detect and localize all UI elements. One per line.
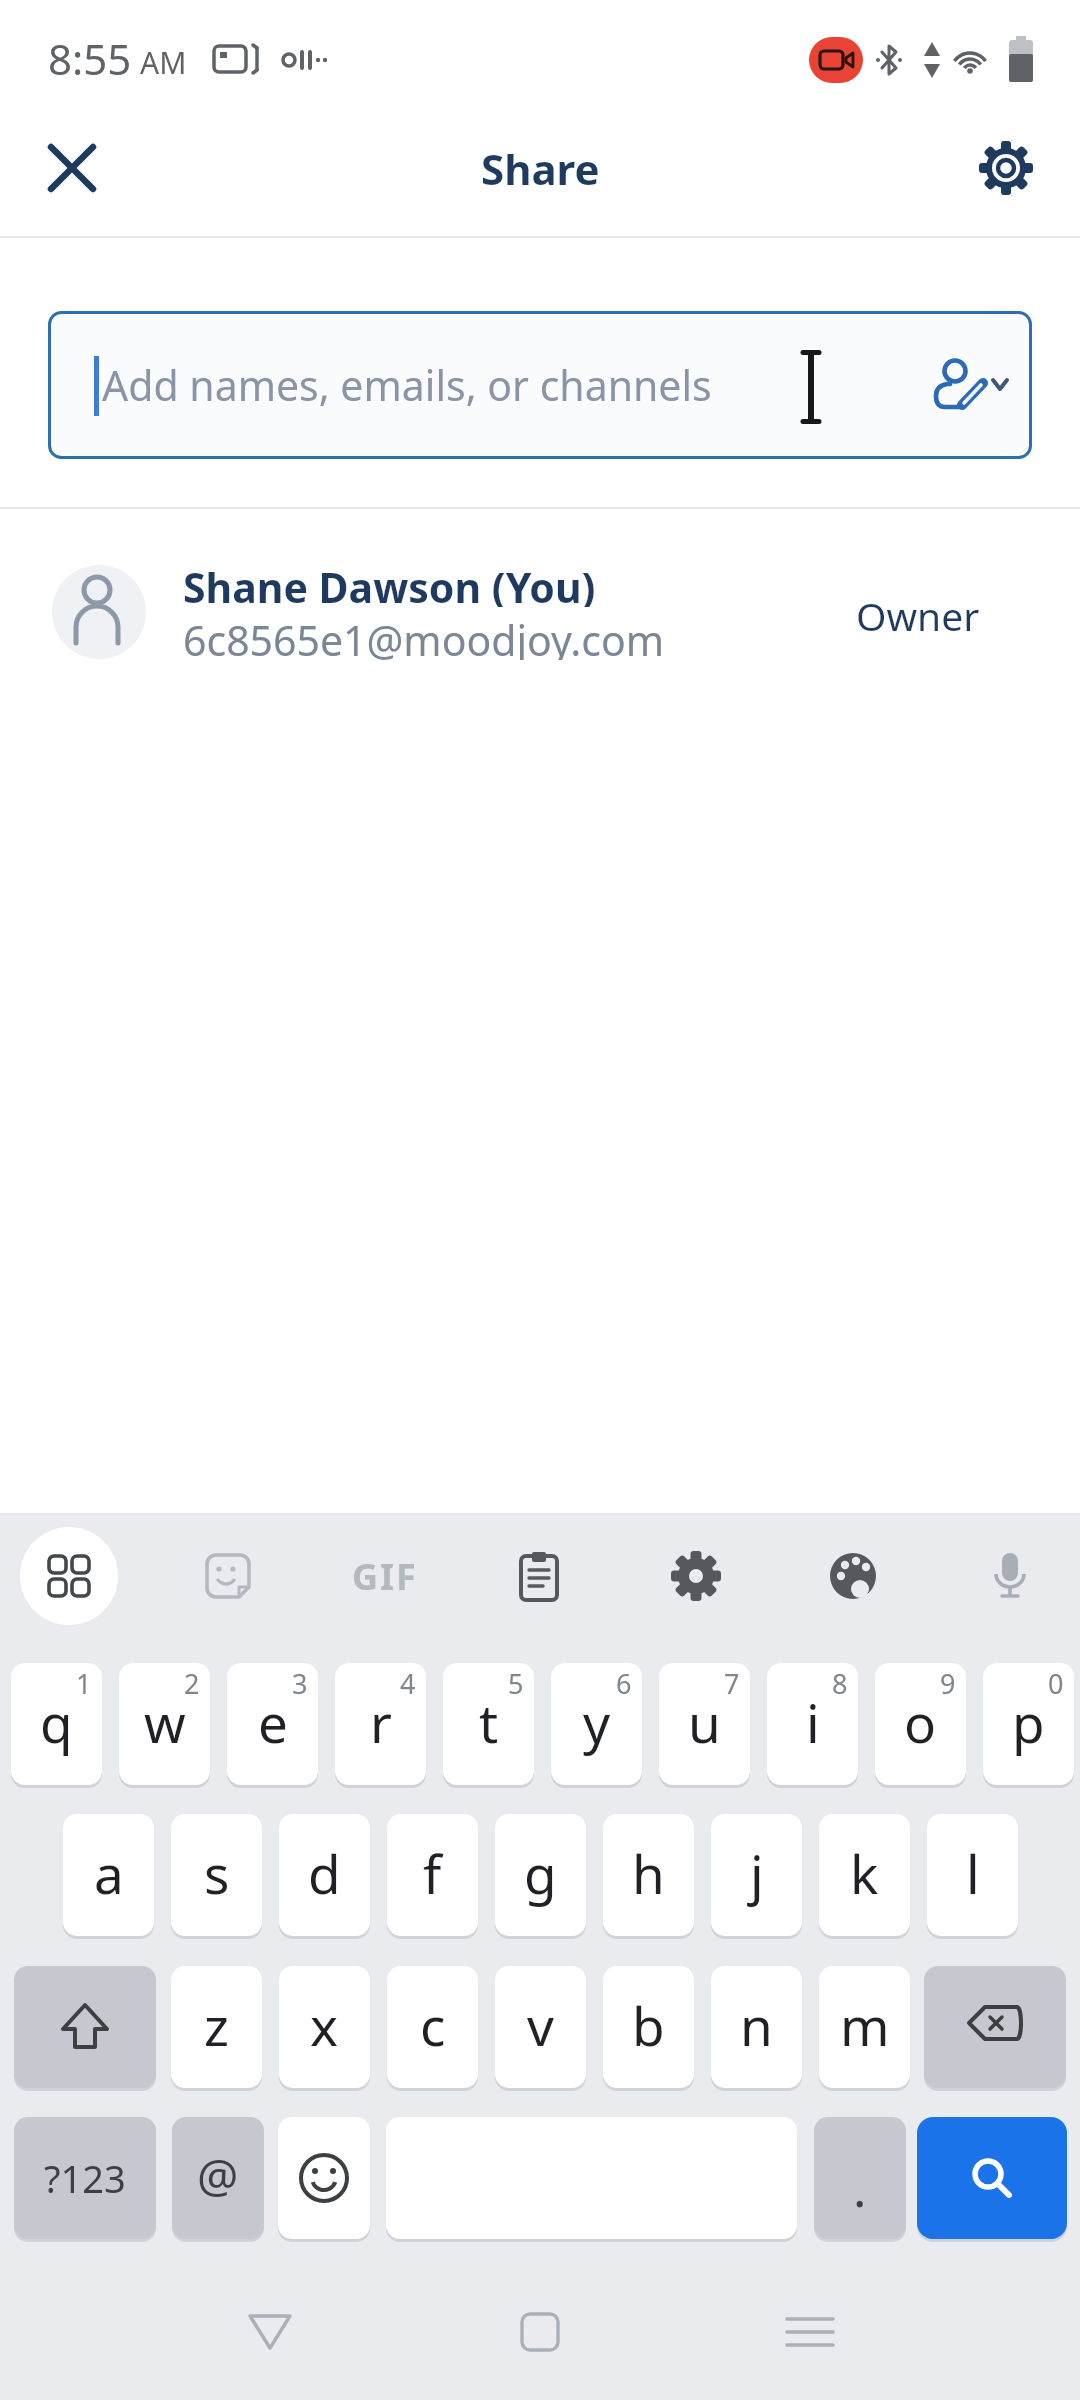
staticText: c <box>420 1989 446 2061</box>
button[interactable] <box>20 1527 118 1625</box>
button[interactable] <box>507 1544 571 1608</box>
staticText: p <box>1012 1686 1045 1758</box>
button[interactable] <box>920 350 1020 420</box>
button[interactable] <box>0 540 1080 684</box>
staticText: @ <box>197 2144 239 2207</box>
staticText: u <box>688 1686 721 1758</box>
staticText: j <box>750 1837 764 1909</box>
button[interactable] <box>972 134 1040 202</box>
staticText: 6c8565e1@moodjoy.com <box>183 612 665 660</box>
staticText: 8 <box>832 1665 848 1702</box>
staticText: 7 <box>724 1665 740 1702</box>
button[interactable] <box>924 1966 1066 2088</box>
staticText: n <box>740 1989 773 2061</box>
button[interactable] <box>917 2117 1067 2239</box>
staticText: s <box>204 1837 230 1909</box>
button[interactable]: n <box>711 1966 802 2088</box>
button[interactable]: m <box>819 1966 910 2088</box>
staticText: k <box>850 1837 879 1909</box>
button[interactable]: x <box>279 1966 370 2088</box>
button[interactable]: o <box>875 1663 966 1785</box>
button[interactable] <box>220 2300 320 2364</box>
staticText: h <box>632 1837 665 1909</box>
button[interactable]: i <box>767 1663 858 1785</box>
staticText: l <box>966 1837 980 1909</box>
staticText: 1 <box>76 1665 92 1702</box>
button[interactable]: y <box>551 1663 642 1785</box>
button[interactable]: r <box>335 1663 426 1785</box>
button[interactable] <box>760 2300 860 2364</box>
staticText: GIF <box>352 1552 418 1601</box>
button[interactable]: z <box>171 1966 262 2088</box>
button[interactable]: t <box>443 1663 534 1785</box>
button[interactable]: p <box>983 1663 1074 1785</box>
button[interactable]: h <box>603 1814 694 1936</box>
button[interactable]: ?123 <box>14 2117 156 2239</box>
staticText: y <box>583 1686 611 1758</box>
staticText: q <box>40 1686 73 1758</box>
button[interactable]: b <box>603 1966 694 2088</box>
staticText: m <box>840 1989 890 2061</box>
staticText: w <box>144 1686 186 1758</box>
staticText: t <box>479 1686 499 1758</box>
staticText: v <box>527 1989 554 2061</box>
staticText: Owner <box>856 589 980 635</box>
button[interactable]: . <box>814 2117 906 2239</box>
button[interactable]: a <box>63 1814 154 1936</box>
staticText: i <box>806 1686 820 1758</box>
staticText: Share <box>481 140 600 197</box>
button[interactable]: v <box>495 1966 586 2088</box>
button[interactable]: e <box>227 1663 318 1785</box>
button[interactable]: g <box>495 1814 586 1936</box>
staticText: 5 <box>508 1665 524 1702</box>
button[interactable]: j <box>711 1814 802 1936</box>
staticText: . <box>853 2154 867 2222</box>
staticText: b <box>632 1989 665 2061</box>
staticText: ?123 <box>44 2152 126 2204</box>
staticText: 9 <box>940 1665 956 1702</box>
button[interactable] <box>278 2117 370 2239</box>
staticText: Add names, emails, or channels <box>102 357 712 413</box>
button[interactable]: GIF <box>343 1544 427 1608</box>
staticText: d <box>308 1837 341 1909</box>
button[interactable] <box>14 1966 156 2088</box>
button[interactable] <box>490 2300 590 2364</box>
staticText: 6 <box>616 1665 632 1702</box>
staticText: 2 <box>184 1665 200 1702</box>
staticText: 0 <box>1048 1665 1064 1702</box>
staticText: a <box>94 1837 124 1909</box>
staticText: e <box>258 1686 288 1758</box>
staticText: x <box>310 1989 339 2061</box>
staticText: Shane Dawson (You) <box>183 559 596 607</box>
button[interactable]: w <box>119 1663 210 1785</box>
button[interactable]: q <box>11 1663 102 1785</box>
button[interactable]: k <box>819 1814 910 1936</box>
button[interactable]: d <box>279 1814 370 1936</box>
button[interactable] <box>664 1544 728 1608</box>
button[interactable]: f <box>387 1814 478 1936</box>
staticText: o <box>904 1686 937 1758</box>
staticText: z <box>204 1989 229 2061</box>
button[interactable] <box>48 311 1032 459</box>
staticText: r <box>370 1686 392 1758</box>
staticText: g <box>524 1837 557 1909</box>
button[interactable]: @ <box>172 2117 264 2239</box>
button[interactable]: u <box>659 1663 750 1785</box>
staticText: 4 <box>400 1665 416 1702</box>
staticText: 3 <box>292 1665 308 1702</box>
staticText: f <box>423 1837 442 1909</box>
button[interactable] <box>196 1544 260 1608</box>
button[interactable]: l <box>927 1814 1018 1936</box>
button[interactable] <box>821 1544 885 1608</box>
button[interactable] <box>38 134 106 202</box>
button[interactable]: s <box>171 1814 262 1936</box>
button[interactable]: c <box>387 1966 478 2088</box>
button[interactable] <box>978 1544 1042 1608</box>
staticText: 8:55 <box>48 30 132 86</box>
staticText: AM <box>140 42 187 83</box>
